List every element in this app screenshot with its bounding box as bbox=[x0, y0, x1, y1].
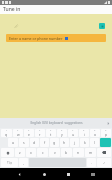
staticText: 0 bbox=[105, 129, 107, 132]
button[interactable]: m bbox=[85, 148, 96, 157]
staticText: g bbox=[53, 140, 56, 145]
button[interactable]: 8 bbox=[79, 129, 89, 137]
button[interactable]: 2 bbox=[13, 129, 23, 137]
staticText: 9 bbox=[94, 129, 96, 132]
button[interactable]: b bbox=[61, 148, 72, 157]
staticText: 4 bbox=[39, 129, 41, 132]
button[interactable]: 4 bbox=[35, 129, 45, 137]
staticText: 1 bbox=[6, 129, 8, 132]
button[interactable]: l bbox=[90, 138, 99, 147]
staticText: v bbox=[54, 150, 56, 155]
button[interactable]: , bbox=[19, 158, 28, 167]
button[interactable]: c bbox=[37, 148, 48, 157]
staticText: n bbox=[77, 150, 80, 155]
button[interactable]: 3 bbox=[24, 129, 34, 137]
button[interactable]: f bbox=[40, 138, 49, 147]
button[interactable]: 6 bbox=[57, 129, 67, 137]
staticText: . bbox=[91, 160, 92, 165]
staticText: Enter a name or phone number bbox=[9, 36, 63, 41]
button[interactable]: ?1☺ bbox=[1, 158, 18, 167]
button[interactable]: Enter bbox=[100, 138, 111, 147]
button[interactable]: ✓ bbox=[97, 158, 111, 167]
staticText: p bbox=[105, 132, 108, 137]
button[interactable]: d bbox=[30, 138, 39, 147]
button[interactable]: Recents bbox=[62, 168, 74, 180]
staticText: i bbox=[84, 132, 85, 137]
button[interactable]: 9 bbox=[90, 129, 100, 137]
staticText: f bbox=[44, 140, 46, 145]
staticText: Tune in bbox=[3, 6, 21, 13]
button[interactable]: g bbox=[50, 138, 59, 147]
staticText: o bbox=[94, 132, 97, 137]
staticText: h bbox=[63, 140, 66, 145]
button[interactable]: x bbox=[26, 148, 36, 157]
staticText: d bbox=[33, 140, 36, 145]
button[interactable]: Hide keyboard bbox=[87, 168, 99, 180]
button[interactable]: Home bbox=[38, 168, 50, 180]
staticText: 8 bbox=[83, 129, 85, 132]
button[interactable]: Shift bbox=[1, 148, 14, 157]
staticText: b bbox=[65, 150, 68, 155]
staticText: c bbox=[42, 150, 44, 155]
staticText: 7 bbox=[72, 129, 74, 132]
staticText: e bbox=[28, 132, 30, 137]
button[interactable]: a bbox=[8, 138, 18, 147]
button[interactable]: Add bbox=[99, 23, 105, 29]
button[interactable]: 0 bbox=[101, 129, 111, 137]
staticText: x bbox=[30, 150, 32, 155]
staticText: t bbox=[50, 132, 52, 137]
staticText: m bbox=[89, 150, 93, 155]
staticText: ?1☺ bbox=[7, 161, 13, 165]
button[interactable]: z bbox=[15, 148, 25, 157]
button[interactable]: j bbox=[70, 138, 79, 147]
staticText: 3 bbox=[28, 129, 30, 132]
staticText: 5 bbox=[50, 129, 52, 132]
staticText: j bbox=[74, 140, 75, 145]
staticText: w bbox=[17, 132, 20, 137]
button[interactable]: s bbox=[19, 138, 29, 147]
staticText: 2 bbox=[17, 129, 19, 132]
staticText: a bbox=[12, 140, 14, 145]
button[interactable]: 5 bbox=[46, 129, 56, 137]
staticText: 6 bbox=[61, 129, 63, 132]
staticText: r bbox=[39, 132, 41, 137]
staticText: u bbox=[72, 132, 75, 137]
staticText: q bbox=[5, 132, 8, 137]
staticText: English (US) keyboard suggestions bbox=[30, 121, 83, 125]
button[interactable]: Backspace bbox=[97, 148, 111, 157]
staticText: l bbox=[94, 140, 95, 145]
button[interactable]: Enter a name or phone number bbox=[6, 34, 106, 42]
button[interactable]: 1 bbox=[1, 129, 12, 137]
staticText: , bbox=[23, 160, 24, 165]
button[interactable]: n bbox=[73, 148, 84, 157]
staticText: k bbox=[84, 140, 86, 145]
button[interactable]: Back bbox=[13, 168, 25, 180]
button[interactable]: h bbox=[60, 138, 69, 147]
button[interactable]: k bbox=[80, 138, 89, 147]
staticText: z bbox=[19, 150, 21, 155]
staticText: s bbox=[23, 140, 25, 145]
staticText: ✓ bbox=[103, 161, 106, 164]
button[interactable]: 7 bbox=[68, 129, 78, 137]
button[interactable]: v bbox=[49, 148, 60, 157]
staticText: y bbox=[61, 132, 63, 137]
